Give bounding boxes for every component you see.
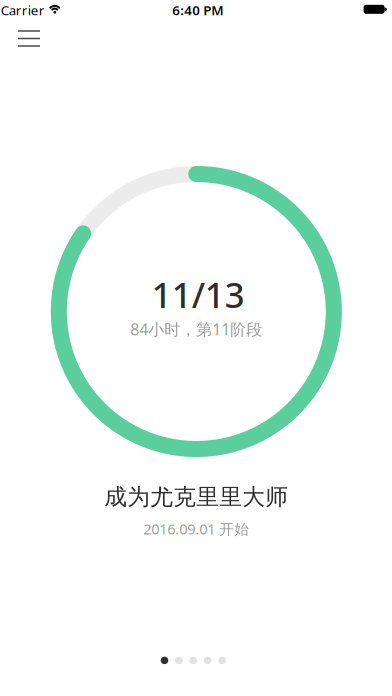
staticText: 11/13 <box>152 271 245 317</box>
staticText: 2016.09.01 开始 <box>143 519 249 539</box>
staticText: 6:40 PM <box>172 1 223 19</box>
staticText: Carrier <box>1 1 45 19</box>
staticText: 成为尤克里里大师 <box>104 483 288 511</box>
staticText: 84小时，第11阶段 <box>130 318 262 340</box>
button[interactable]: Menu <box>8 20 50 57</box>
